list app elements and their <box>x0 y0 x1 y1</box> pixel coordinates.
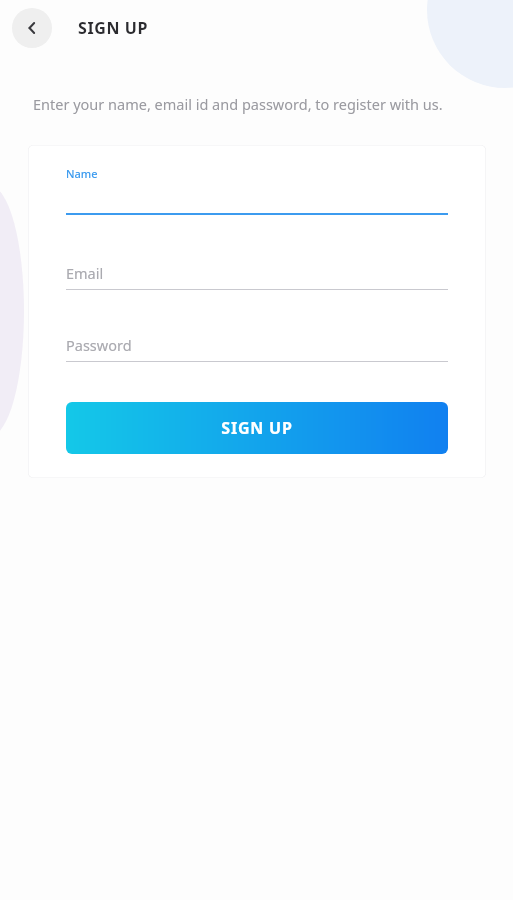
button[interactable]: SIGN UP <box>66 402 448 454</box>
staticText: SIGN UP <box>78 17 149 39</box>
button[interactable]: Email <box>66 263 448 290</box>
staticText: Password <box>66 335 132 355</box>
staticText: Name <box>66 166 98 181</box>
button[interactable]: Password <box>66 335 448 362</box>
staticText: SIGN UP <box>221 417 293 439</box>
button[interactable]: Back <box>12 8 52 48</box>
staticText: Enter your name, email id and password, … <box>33 94 493 114</box>
staticText: Email <box>66 263 104 283</box>
button[interactable]: Name <box>66 166 448 215</box>
